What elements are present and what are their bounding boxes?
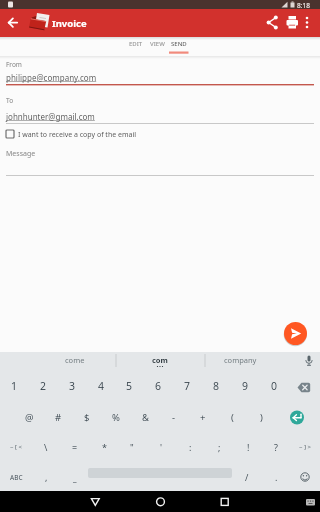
staticText: SEND [171, 40, 187, 48]
button[interactable]: 2 [30, 374, 56, 398]
button[interactable] [0, 9, 320, 37]
staticText: - [172, 411, 176, 424]
button[interactable]: ? [264, 435, 288, 459]
button[interactable]: - [161, 405, 187, 429]
button[interactable]: 4 [88, 374, 114, 398]
button[interactable]: = [63, 435, 87, 459]
button[interactable] [0, 106, 320, 125]
button[interactable]: # [45, 405, 71, 429]
button[interactable] [284, 14, 301, 31]
button[interactable]: * [92, 435, 116, 459]
staticText: ( [231, 411, 234, 424]
button[interactable]: com [130, 353, 190, 367]
button[interactable]: 3 [59, 374, 85, 398]
staticText: EDIT [129, 40, 143, 48]
button[interactable]: ( [219, 405, 245, 429]
button[interactable]: 9 [232, 374, 258, 398]
button[interactable]: % [103, 405, 129, 429]
staticText: ) [260, 411, 263, 424]
button[interactable]: ) [248, 405, 274, 429]
staticText: Invoice [52, 17, 87, 30]
staticText: 5 [126, 379, 133, 393]
button[interactable]: ! [236, 435, 260, 459]
button[interactable] [151, 493, 169, 510]
staticText: \ [44, 441, 48, 453]
staticText: _ [73, 472, 77, 483]
button[interactable]: 5 [116, 374, 142, 398]
staticText: @ [25, 411, 34, 424]
button[interactable] [4, 128, 134, 140]
button[interactable]: come [45, 353, 105, 367]
staticText: ? [274, 441, 278, 453]
button[interactable]: 1 [1, 374, 27, 398]
button[interactable]: " [120, 435, 144, 459]
staticText: 8:18 [297, 1, 310, 10]
button[interactable]: 0 [261, 374, 287, 398]
staticText: / [245, 471, 249, 483]
button[interactable] [294, 466, 316, 488]
staticText: ! [247, 441, 250, 453]
button[interactable] [4, 14, 22, 32]
staticText: come [65, 355, 85, 365]
button[interactable]: ~ ] > [293, 435, 317, 459]
staticText: 4 [98, 379, 105, 393]
staticText: 8 [213, 379, 220, 393]
button[interactable]: 7 [174, 374, 200, 398]
staticText: : [189, 441, 192, 453]
staticText: ~ ] > [299, 443, 311, 451]
staticText: ; [218, 441, 221, 453]
staticText: # [55, 411, 62, 424]
staticText: 0 [271, 379, 278, 393]
staticText: 2 [40, 379, 47, 393]
button[interactable]: _ [63, 465, 87, 489]
staticText: 9 [242, 379, 249, 393]
staticText: To [6, 96, 14, 105]
staticText: & [142, 411, 149, 424]
button[interactable] [300, 352, 318, 368]
staticText: 6 [155, 379, 162, 393]
staticText: VIEW [150, 40, 165, 48]
button[interactable]: ; [207, 435, 231, 459]
staticText: * [102, 441, 107, 453]
button[interactable] [292, 375, 316, 399]
button[interactable] [216, 493, 234, 510]
button[interactable]: , [34, 465, 58, 489]
staticText: Message [6, 149, 36, 159]
staticText: = [72, 441, 78, 453]
button[interactable] [0, 148, 320, 176]
staticText: . [275, 471, 278, 483]
staticText: $ [84, 411, 90, 424]
button[interactable] [264, 14, 281, 31]
button[interactable]: ' [149, 435, 173, 459]
button[interactable]: 8 [203, 374, 229, 398]
button[interactable]: 6 [145, 374, 171, 398]
button[interactable] [0, 66, 320, 86]
staticText: From [6, 60, 22, 69]
staticText: philippe@company.com [6, 72, 97, 83]
button[interactable]: EDIT [106, 37, 166, 51]
button[interactable]: ~ [ < [4, 435, 28, 459]
button[interactable]: $ [74, 405, 100, 429]
button[interactable]: @ [16, 405, 42, 429]
button[interactable]: & [132, 405, 158, 429]
button[interactable]: / [235, 465, 259, 489]
button[interactable] [284, 322, 307, 345]
staticText: company [224, 355, 257, 365]
button[interactable] [300, 14, 315, 31]
button[interactable]: : [178, 435, 202, 459]
button[interactable]: \ [34, 435, 58, 459]
staticText: ABC [10, 473, 23, 482]
button[interactable] [286, 406, 308, 428]
button[interactable]: ABC [3, 465, 29, 489]
button[interactable] [86, 493, 104, 510]
staticText: + [200, 411, 206, 424]
staticText: johnhunter@gmail.com [6, 111, 95, 122]
staticText: 1 [11, 379, 18, 393]
button[interactable]: company [210, 353, 270, 367]
staticText: I want to receive a copy of the email [18, 130, 137, 140]
button[interactable]: + [190, 405, 216, 429]
button[interactable]: . [264, 465, 288, 489]
button[interactable]: SEND [149, 37, 209, 51]
button[interactable]: VIEW [127, 37, 187, 51]
